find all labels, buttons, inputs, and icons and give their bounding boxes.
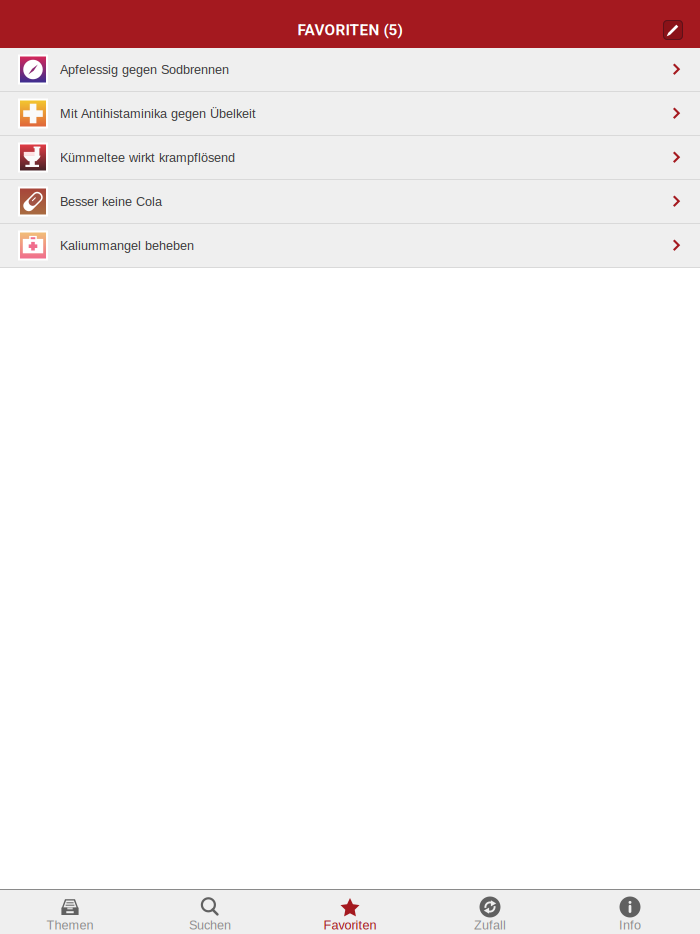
staticText: Kümmeltee wirkt krampflösend xyxy=(60,150,235,165)
button[interactable]: Apfelessig gegen Sodbrennen xyxy=(0,48,700,92)
button[interactable]: Besser keine Cola xyxy=(0,180,700,224)
staticText: Suchen xyxy=(189,918,231,932)
staticText: FAVORITEN (5) xyxy=(297,21,402,39)
button[interactable]: Bearbeiten xyxy=(660,17,686,43)
button[interactable]: Suchen xyxy=(140,890,280,934)
staticText: Favoriten xyxy=(323,918,376,932)
button[interactable]: Themen xyxy=(0,890,140,934)
staticText: Kaliummangel beheben xyxy=(60,238,194,253)
staticText: Mit Antihistaminika gegen Übelkeit xyxy=(60,106,256,121)
button[interactable]: Kaliummangel beheben xyxy=(0,224,700,268)
staticText: Zufall xyxy=(474,918,506,932)
staticText: Info xyxy=(619,918,641,932)
button[interactable]: Kümmeltee wirkt krampflösend xyxy=(0,136,700,180)
button[interactable]: Mit Antihistaminika gegen Übelkeit xyxy=(0,92,700,136)
button[interactable]: Info xyxy=(560,890,700,934)
staticText: Besser keine Cola xyxy=(60,194,162,209)
button[interactable]: Favoriten xyxy=(280,890,420,934)
staticText: Themen xyxy=(46,918,93,932)
staticText: Apfelessig gegen Sodbrennen xyxy=(60,62,229,77)
button[interactable]: Zufall xyxy=(420,890,560,934)
